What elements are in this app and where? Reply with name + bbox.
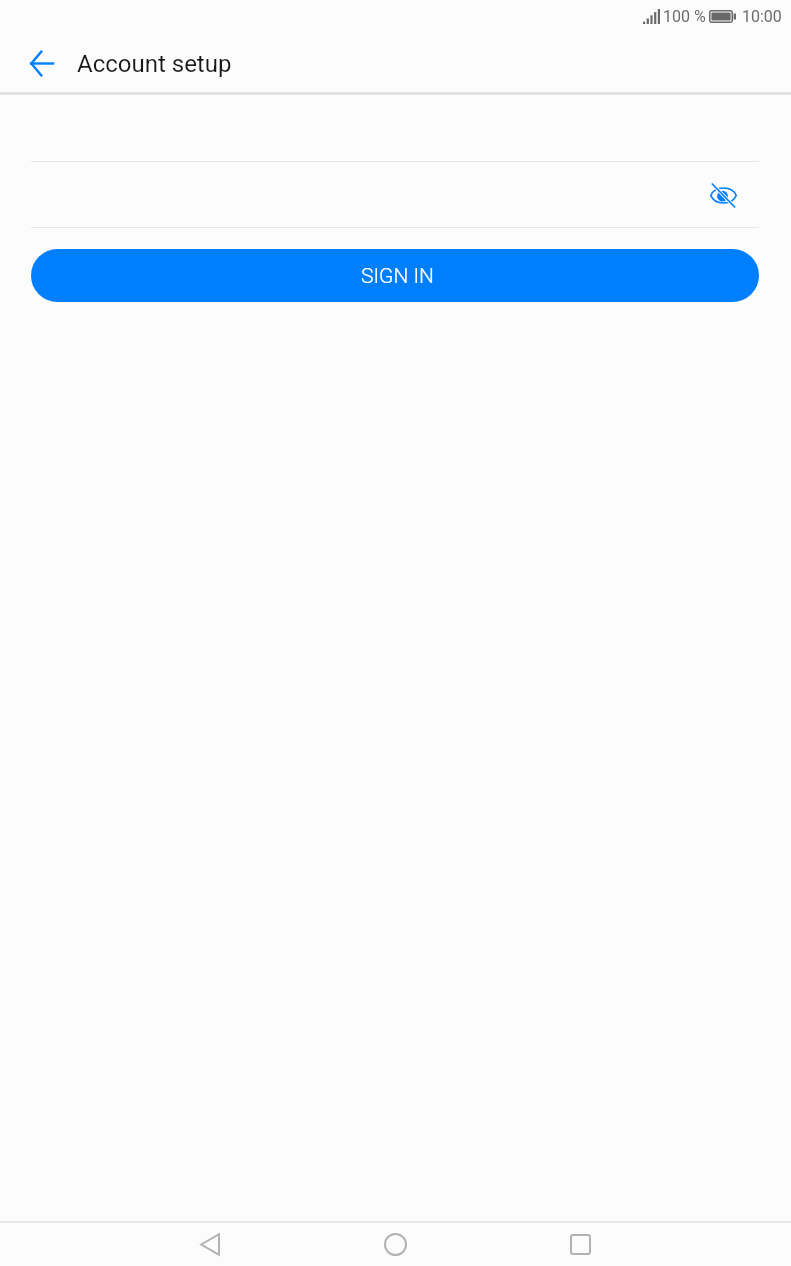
staticText: 10:00 — [742, 7, 782, 26]
button[interactable]: Back — [186, 1223, 234, 1266]
button[interactable]: Home — [371, 1223, 419, 1266]
staticText: 100 % — [663, 7, 706, 26]
button[interactable]: Back — [18, 38, 66, 86]
button[interactable]: Show password — [699, 171, 747, 219]
staticText: Account setup — [77, 50, 232, 78]
button[interactable]: Password — [31, 162, 759, 227]
button[interactable]: SIGN IN — [31, 249, 759, 302]
button[interactable]: Recent apps — [556, 1223, 604, 1266]
staticText: SIGN IN — [361, 264, 434, 289]
